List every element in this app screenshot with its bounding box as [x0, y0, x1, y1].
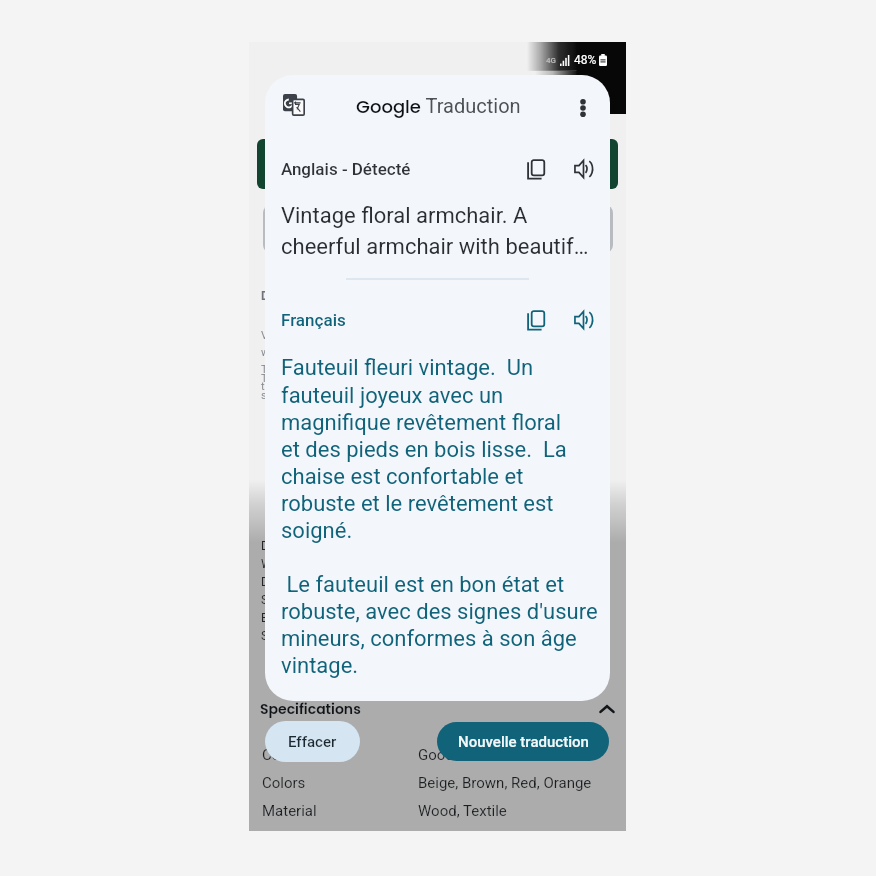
staticText: Nouvelle traduction [458, 733, 589, 751]
button[interactable]: Français [281, 310, 346, 330]
button[interactable]: Copy [516, 300, 556, 340]
staticText: 4G [546, 56, 556, 65]
button[interactable]: Listen [563, 300, 603, 340]
staticText: Français [281, 310, 346, 330]
staticText: Good [418, 746, 454, 764]
staticText: Dimensions Weight Delivery Shipping Bran… [261, 539, 325, 643]
staticText: Anglais - Détecté [281, 159, 411, 179]
button[interactable]: Colors [262, 774, 617, 792]
button[interactable]: Condition [262, 746, 617, 764]
staticText: Fauteuil fleuri vintage. Un fauteuil joy… [281, 355, 598, 678]
button[interactable]: Copy [516, 149, 556, 189]
staticText: Description [261, 289, 323, 303]
staticText: Beige, Brown, Red, Orange [418, 774, 592, 792]
staticText: Specifications [260, 699, 361, 719]
button[interactable]: Nouvelle traduction [437, 722, 609, 761]
button[interactable]: Listen [563, 149, 603, 189]
button[interactable]: Effacer [265, 721, 360, 762]
staticText: Vintage floral armchair. A cheerful armc… [261, 329, 474, 393]
button[interactable]: Anglais - Détecté [281, 159, 411, 179]
button[interactable]: Material [262, 802, 617, 820]
staticText: Colors [262, 774, 418, 792]
staticText: The armchair is in good condition and st… [261, 372, 446, 402]
staticText: Condition [262, 746, 418, 764]
staticText: Effacer [288, 733, 337, 751]
staticText: Wood, Textile [418, 802, 507, 820]
staticText: Material [262, 802, 418, 820]
staticText: Vintage floral armchair. A cheerful armc… [281, 203, 589, 259]
staticText: 48% [574, 53, 597, 67]
button[interactable]: Google Translate [283, 94, 305, 116]
staticText: Google Traduction [356, 94, 521, 119]
button[interactable]: More options [568, 87, 598, 117]
